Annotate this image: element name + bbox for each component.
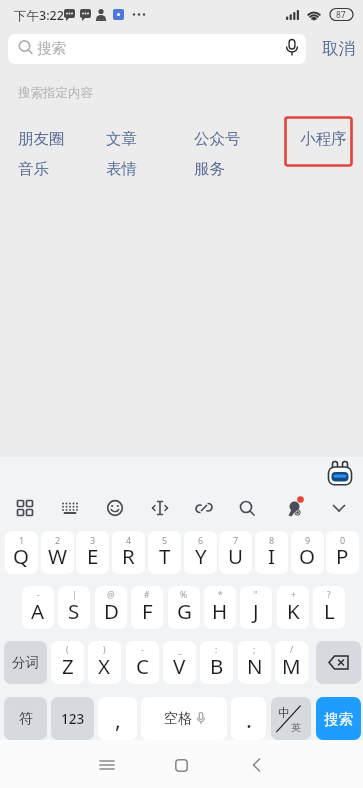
staticText: 123: [61, 710, 85, 728]
button[interactable]: ?: [313, 586, 345, 629]
staticText: 2: [55, 534, 61, 546]
button[interactable]: 中: [271, 697, 311, 740]
button[interactable]: 5: [148, 531, 181, 574]
button[interactable]: 服务: [194, 159, 225, 179]
button[interactable]: 音乐: [18, 159, 49, 179]
staticText: 音乐: [18, 159, 49, 179]
staticText: -: [37, 589, 40, 601]
button[interactable]: [101, 494, 129, 522]
button[interactable]: [93, 751, 121, 779]
staticText: 分词: [12, 654, 39, 671]
staticText: 0: [340, 534, 346, 546]
staticText: X: [98, 652, 111, 680]
button[interactable]: /: [275, 641, 308, 684]
button[interactable]: [56, 494, 84, 522]
button[interactable]: ,: [98, 697, 137, 740]
button[interactable]: *: [204, 586, 236, 629]
button[interactable]: 9: [291, 531, 324, 574]
button[interactable]: +: [277, 586, 309, 629]
staticText: 服务: [194, 159, 225, 179]
staticText: 搜索: [324, 710, 353, 728]
staticText: #: [144, 589, 150, 601]
staticText: (: [66, 644, 69, 656]
staticText: N: [247, 652, 263, 680]
staticText: 9: [305, 534, 311, 546]
button[interactable]: [190, 494, 218, 522]
staticText: 英: [291, 721, 301, 734]
button[interactable]: ": [240, 586, 272, 629]
staticText: 7: [233, 534, 239, 546]
button[interactable]: 公众号: [194, 129, 241, 149]
staticText: 4: [126, 534, 132, 546]
staticText: U: [228, 542, 243, 570]
staticText: T: [159, 542, 171, 570]
button[interactable]: 小程序: [300, 129, 347, 149]
button[interactable]: 1: [5, 531, 38, 574]
button[interactable]: 文章: [106, 129, 137, 149]
staticText: 公众号: [194, 129, 241, 149]
button[interactable]: [327, 460, 353, 486]
button[interactable]: [316, 641, 361, 684]
staticText: D: [104, 597, 119, 625]
button[interactable]: -: [126, 641, 159, 684]
staticText: Z: [62, 652, 74, 680]
button[interactable]: [167, 751, 195, 779]
button[interactable]: 取消: [316, 33, 360, 63]
button[interactable]: 7: [219, 531, 252, 574]
staticText: Y: [195, 542, 207, 570]
button[interactable]: [233, 494, 261, 522]
staticText: 6: [198, 534, 204, 546]
staticText: 1: [19, 534, 25, 546]
button[interactable]: 分词: [4, 641, 47, 684]
button[interactable]: _: [163, 641, 196, 684]
button[interactable]: @: [95, 586, 127, 629]
staticText: H: [212, 597, 228, 625]
button[interactable]: :: [200, 641, 233, 684]
staticText: J: [253, 597, 259, 625]
staticText: 符: [19, 710, 33, 728]
button[interactable]: ): [88, 641, 121, 684]
staticText: 小程序: [300, 129, 347, 149]
button[interactable]: 123: [51, 697, 94, 740]
button[interactable]: 搜索: [316, 697, 361, 740]
button[interactable]: (: [51, 641, 84, 684]
button[interactable]: 表情: [106, 159, 137, 179]
staticText: 中: [278, 705, 290, 720]
button[interactable]: [280, 494, 308, 522]
staticText: |: [72, 589, 77, 601]
button[interactable]: [11, 494, 39, 522]
button[interactable]: %: [168, 586, 200, 629]
button[interactable]: 空格: [141, 697, 227, 740]
staticText: /: [290, 644, 294, 656]
staticText: S: [68, 597, 80, 625]
button[interactable]: 朋友圈: [18, 129, 65, 149]
staticText: P: [336, 542, 349, 570]
staticText: 5: [162, 534, 168, 546]
button[interactable]: 8: [255, 531, 288, 574]
button[interactable]: .: [231, 697, 266, 740]
button[interactable]: |: [58, 586, 90, 629]
button[interactable]: ;: [238, 641, 271, 684]
button[interactable]: 2: [41, 531, 74, 574]
staticText: 下午3:22: [14, 7, 64, 24]
staticText: R: [122, 542, 135, 570]
button[interactable]: 0: [326, 531, 359, 574]
button[interactable]: #: [131, 586, 163, 629]
staticText: A: [31, 597, 45, 625]
button[interactable]: 4: [112, 531, 145, 574]
staticText: ): [103, 644, 106, 656]
button[interactable]: -: [22, 586, 54, 629]
button[interactable]: 搜索: [8, 34, 306, 64]
staticText: 朋友圈: [18, 129, 65, 149]
staticText: Q: [13, 542, 30, 570]
staticText: 空格: [164, 710, 192, 728]
button[interactable]: [146, 494, 174, 522]
button[interactable]: [325, 494, 353, 522]
button[interactable]: 3: [76, 531, 109, 574]
button[interactable]: 6: [184, 531, 217, 574]
button[interactable]: [242, 751, 270, 779]
staticText: :: [215, 644, 218, 656]
staticText: G: [177, 597, 192, 625]
staticText: *: [218, 589, 223, 601]
button[interactable]: 符: [4, 697, 47, 740]
